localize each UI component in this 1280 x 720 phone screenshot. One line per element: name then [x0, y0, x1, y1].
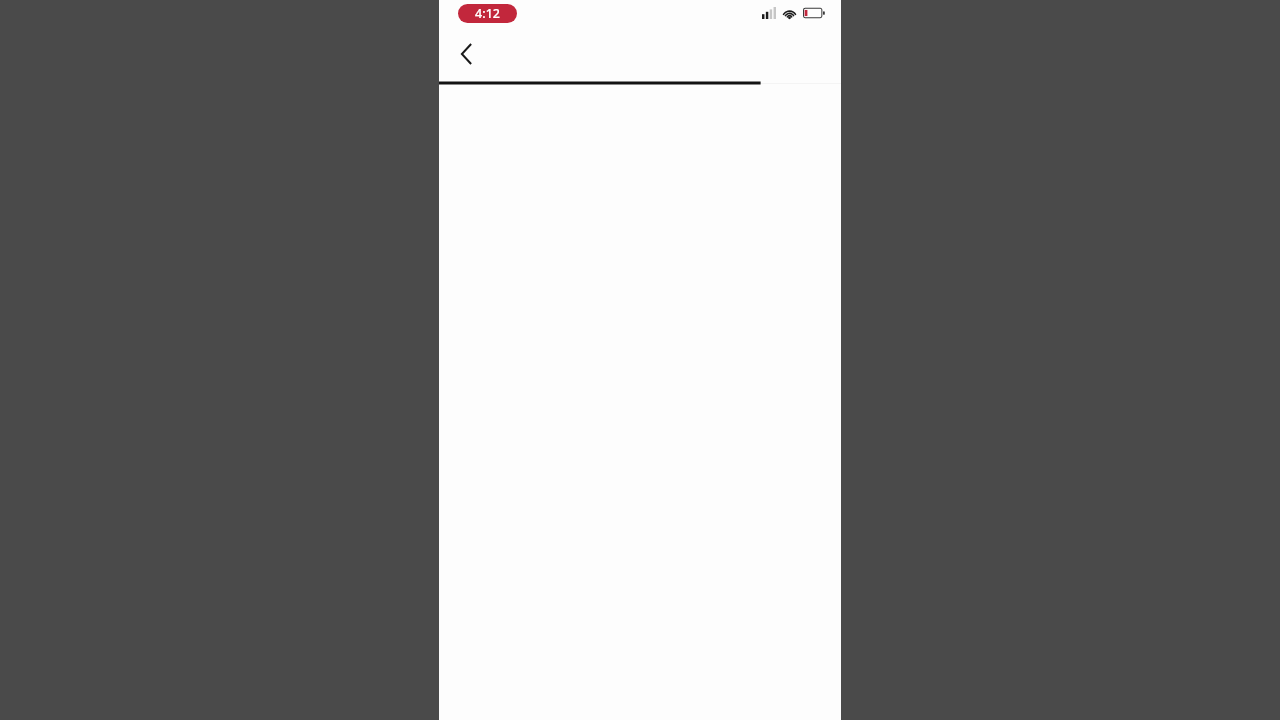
button[interactable]: Back [446, 34, 486, 74]
staticText: 4:12 [475, 5, 500, 22]
